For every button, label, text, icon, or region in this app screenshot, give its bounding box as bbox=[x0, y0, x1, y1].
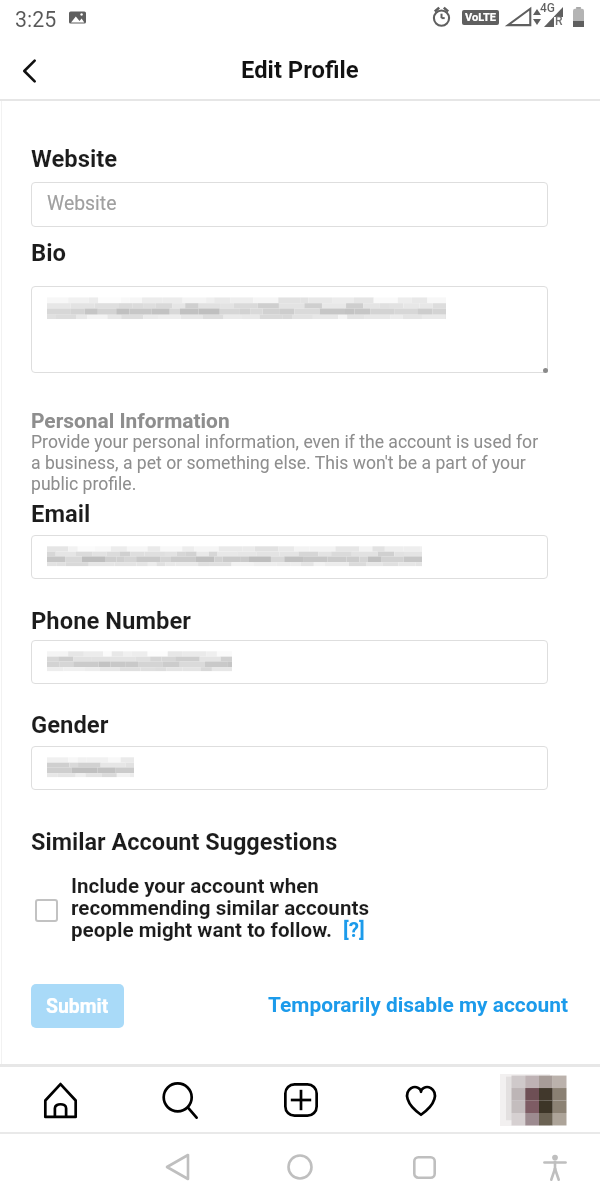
button[interactable]: Temporarily disable my account bbox=[268, 993, 569, 1017]
button[interactable]: Home bbox=[20, 1067, 100, 1133]
button[interactable]: Accessibility bbox=[522, 1134, 588, 1200]
staticText: Personal Information bbox=[31, 409, 230, 433]
button[interactable]: Include your account when bbox=[27, 874, 547, 952]
staticText: Provide your personal information, even … bbox=[31, 432, 539, 453]
button[interactable] bbox=[31, 640, 548, 684]
staticText: 4G bbox=[540, 1, 555, 15]
button[interactable]: Recents bbox=[391, 1134, 457, 1200]
button[interactable]: Create bbox=[261, 1067, 341, 1133]
button[interactable]: Back bbox=[0, 42, 60, 99]
button[interactable] bbox=[31, 182, 548, 227]
button[interactable]: Search bbox=[140, 1067, 220, 1133]
staticText: Edit Profile bbox=[241, 56, 359, 84]
staticText: Website bbox=[47, 192, 117, 215]
button[interactable] bbox=[31, 535, 548, 579]
button[interactable]: Back bbox=[144, 1134, 210, 1200]
staticText: Similar Account Suggestions bbox=[31, 828, 338, 856]
button[interactable]: Home bbox=[267, 1134, 333, 1200]
staticText: Submit bbox=[46, 995, 109, 1018]
staticText: Email bbox=[31, 500, 91, 528]
button[interactable]: Activity bbox=[381, 1067, 461, 1133]
staticText: public profile. bbox=[31, 474, 137, 495]
staticText: Temporarily disable my account bbox=[268, 993, 569, 1017]
button[interactable] bbox=[31, 746, 548, 790]
staticText: Phone Number bbox=[31, 607, 191, 635]
staticText: Include your account when bbox=[71, 874, 319, 898]
staticText: recommending similar accounts bbox=[71, 896, 369, 920]
staticText: a business, a pet or something else. Thi… bbox=[31, 453, 526, 474]
staticText: [?] bbox=[343, 918, 365, 942]
button[interactable]: Submit bbox=[31, 984, 124, 1028]
staticText: people might want to follow. bbox=[71, 918, 343, 942]
staticText: Gender bbox=[31, 711, 109, 739]
staticText: R bbox=[555, 14, 563, 28]
staticText: VoLTE bbox=[465, 11, 497, 24]
button[interactable]: Profile bbox=[485, 1067, 565, 1133]
staticText: 3:25 bbox=[15, 7, 57, 32]
staticText: Bio bbox=[31, 239, 66, 267]
button[interactable] bbox=[31, 286, 548, 373]
staticText: Website bbox=[31, 145, 118, 173]
